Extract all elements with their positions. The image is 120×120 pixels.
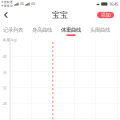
staticText: 头围曲线 (90, 27, 110, 33)
staticText: 中国移动 (1, 4, 13, 7)
staticText: 身高曲线 (32, 27, 52, 33)
staticText: 28 (2, 101, 6, 106)
button[interactable]: 身高曲线 (27, 22, 56, 36)
staticText: 16:45 (109, 1, 118, 7)
staticText: 36 (2, 69, 6, 75)
staticText: 记录列表 (3, 27, 23, 33)
staticText: 宝宝 (52, 10, 68, 20)
button[interactable]: 记录列表 (0, 22, 27, 36)
staticText: 4G (20, 2, 24, 6)
staticText: 体重曲线 (61, 27, 81, 33)
staticText: 32 (2, 85, 6, 90)
button[interactable]: 返回 (0, 8, 12, 22)
staticText: 中国联通 (1, 1, 13, 4)
staticText: 40 (2, 54, 6, 59)
button[interactable]: 头围曲线 (85, 22, 114, 36)
staticText: 体重(kg) (3, 37, 17, 42)
button[interactable]: 添加 (97, 12, 114, 18)
staticText: 4G (31, 2, 35, 6)
button[interactable]: 体重曲线 (56, 22, 85, 36)
staticText: 添加 (100, 12, 110, 18)
